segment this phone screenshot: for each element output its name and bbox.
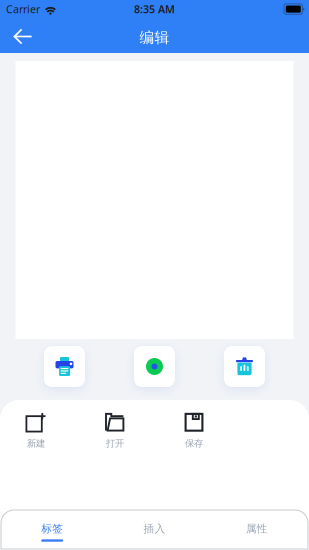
staticText: 打开 xyxy=(106,438,124,449)
button[interactable]: 属性 xyxy=(206,510,308,549)
button[interactable]: 标签 xyxy=(1,510,103,549)
button[interactable]: 打开 xyxy=(80,409,150,453)
staticText: 属性 xyxy=(246,522,268,535)
staticText: 新建 xyxy=(27,438,45,449)
button[interactable]: 录制 xyxy=(134,346,175,387)
staticText: 标签 xyxy=(41,522,63,535)
button[interactable]: 保存 xyxy=(159,409,229,453)
button[interactable]: 插入 xyxy=(103,510,206,549)
button[interactable]: 删除 xyxy=(224,346,265,387)
staticText: 插入 xyxy=(143,522,165,535)
button[interactable]: 新建 xyxy=(1,409,71,453)
staticText: 保存 xyxy=(185,438,203,449)
button[interactable]: Back xyxy=(3,20,43,53)
staticText: 8:35 AM xyxy=(134,2,175,16)
button[interactable]: 打印 xyxy=(44,346,85,387)
staticText: Carrier xyxy=(6,2,40,16)
staticText: 编辑 xyxy=(139,28,169,46)
